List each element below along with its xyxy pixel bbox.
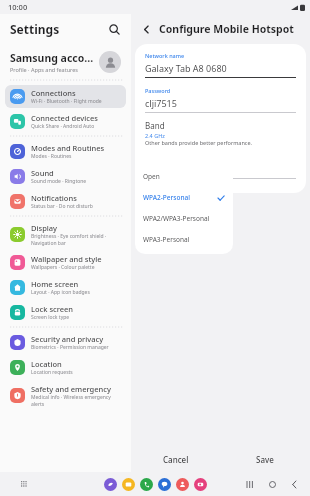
staticText: Network name xyxy=(145,52,185,59)
staticText: Location xyxy=(31,359,62,369)
button[interactable] xyxy=(176,478,189,491)
button[interactable]: All apps xyxy=(16,476,32,492)
staticText: Open xyxy=(143,172,225,181)
button[interactable]: Cancel xyxy=(131,446,220,472)
staticText: Home screen xyxy=(31,279,79,289)
button[interactable]: Back xyxy=(137,20,155,38)
staticText: Save xyxy=(256,454,274,465)
staticText: WPA2/WPA3-Personal xyxy=(143,214,225,223)
button[interactable]: Lock screen xyxy=(5,301,126,324)
staticText: Wallpaper and style xyxy=(31,254,102,264)
button[interactable]: Sound xyxy=(5,165,126,188)
button[interactable]: Search xyxy=(105,20,123,38)
staticText: WPA2-Personal xyxy=(143,193,217,202)
staticText: Settings xyxy=(10,21,60,37)
button[interactable]: Modes and Routines xyxy=(5,140,126,163)
button[interactable]: Save xyxy=(220,446,310,472)
staticText: Sound xyxy=(31,168,54,178)
staticText: Quick Share · Android Auto xyxy=(31,123,95,130)
staticText: Cancel xyxy=(163,454,189,465)
button[interactable] xyxy=(104,478,117,491)
button[interactable]: Back xyxy=(288,478,300,490)
staticText: Configure Mobile Hotspot xyxy=(159,22,294,36)
button[interactable]: WPA3-Personal xyxy=(135,229,233,250)
button[interactable] xyxy=(158,478,171,491)
button[interactable]: Location xyxy=(5,356,126,379)
staticText: Lock screen xyxy=(31,304,74,314)
staticText: Sound mode · Ringtone xyxy=(31,178,87,185)
button[interactable] xyxy=(122,478,135,491)
button[interactable]: WPA2/WPA3-Personal xyxy=(135,208,233,229)
staticText: Galaxy Tab A8 0680 xyxy=(145,62,227,74)
button[interactable]: Display xyxy=(5,220,126,249)
button[interactable]: Connected devices xyxy=(5,110,126,133)
staticText: Modes and Routines xyxy=(31,143,105,153)
staticText: Band xyxy=(145,120,165,131)
staticText: Location requests xyxy=(31,369,73,376)
button[interactable] xyxy=(194,478,207,491)
staticText: Modes · Routines xyxy=(31,153,72,160)
button[interactable]: Recents xyxy=(244,478,256,490)
button[interactable]: Open xyxy=(135,166,233,187)
button[interactable]: WPA2-Personal xyxy=(135,187,233,208)
staticText: Medical info · Wireless emergency alerts xyxy=(31,394,121,407)
button[interactable]: Wallpaper and style xyxy=(5,251,126,274)
button[interactable]: Notifications xyxy=(5,190,126,213)
staticText: Notifications xyxy=(31,193,77,203)
staticText: Wi-Fi · Bluetooth · Flight mode xyxy=(31,98,102,105)
staticText: 2.4 GHz xyxy=(145,132,165,139)
button[interactable] xyxy=(140,478,153,491)
button[interactable]: Safety and emergency xyxy=(5,381,126,410)
button[interactable]: Connections xyxy=(5,85,126,108)
staticText: Safety and emergency xyxy=(31,384,111,394)
button[interactable]: Samsung account xyxy=(0,44,131,80)
button[interactable]: Home xyxy=(266,478,278,490)
staticText: Profile · Apps and features xyxy=(10,66,78,73)
staticText: Security and privacy xyxy=(31,334,104,344)
button[interactable]: Home screen xyxy=(5,276,126,299)
staticText: WPA3-Personal xyxy=(143,235,225,244)
staticText: Other bands provide better performance. xyxy=(145,139,253,146)
staticText: Brightness · Eye comfort shield · Naviga… xyxy=(31,233,121,246)
staticText: Password xyxy=(145,87,171,94)
staticText: Connections xyxy=(31,88,76,98)
staticText: Layout · App icon badges xyxy=(31,289,90,296)
staticText: Status bar · Do not disturb xyxy=(31,203,93,210)
staticText: Display xyxy=(31,223,58,233)
staticText: 10:00 xyxy=(8,2,28,12)
staticText: Wallpapers · Colour palette xyxy=(31,264,95,271)
staticText: clji7515 xyxy=(145,97,177,109)
staticText: Screen lock type xyxy=(31,314,70,321)
staticText: Biometrics · Permission manager xyxy=(31,344,109,351)
button[interactable]: Security and privacy xyxy=(5,331,126,354)
staticText: Samsung account xyxy=(10,51,99,65)
staticText: Connected devices xyxy=(31,113,98,123)
